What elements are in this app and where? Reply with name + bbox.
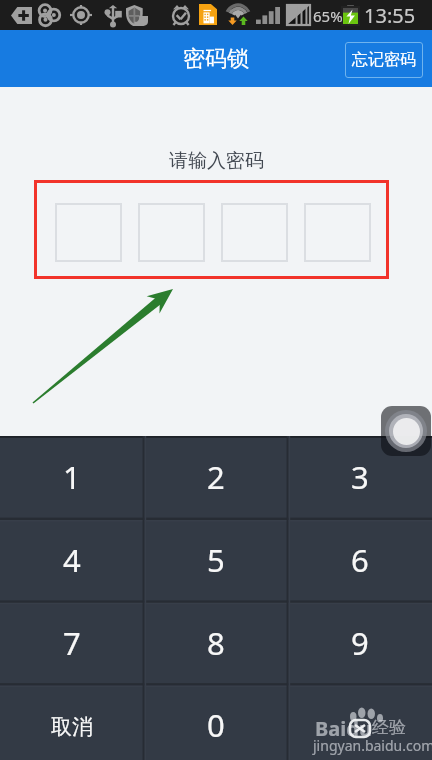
staticText: 密码锁 <box>183 45 249 73</box>
button[interactable]: 2 <box>144 436 288 519</box>
staticText: 经验 <box>372 717 406 738</box>
staticText: 2 <box>207 456 225 498</box>
button[interactable] <box>221 203 288 262</box>
staticText: Baidu <box>315 715 372 742</box>
button[interactable]: 6 <box>288 519 432 602</box>
staticText: 3 <box>351 456 369 498</box>
button[interactable] <box>138 203 205 262</box>
button[interactable]: 5 <box>144 519 288 602</box>
staticText: 忘记密码 <box>352 50 416 70</box>
button[interactable]: 0 <box>144 685 288 760</box>
button[interactable]: 8 <box>144 602 288 685</box>
button[interactable] <box>304 203 371 262</box>
button[interactable] <box>55 203 122 262</box>
button[interactable]: 3 <box>288 436 432 519</box>
button[interactable]: Record <box>381 406 431 456</box>
staticText: 7 <box>63 622 81 664</box>
button[interactable]: 7 <box>0 602 144 685</box>
button[interactable]: 4 <box>0 519 144 602</box>
staticText: 0 <box>207 704 225 746</box>
button[interactable]: 1 <box>0 436 144 519</box>
staticText: 请输入密码 <box>169 149 264 173</box>
staticText: 9 <box>351 622 369 664</box>
staticText: 1 <box>63 456 81 498</box>
staticText: jingyan.baidu.com <box>313 736 432 755</box>
staticText: 5 <box>207 539 225 581</box>
button[interactable]: 取消 <box>0 685 144 760</box>
staticText: 取消 <box>51 714 93 740</box>
button[interactable]: 忘记密码 <box>345 42 423 78</box>
staticText: 8 <box>207 622 225 664</box>
staticText: 13:55 <box>364 2 416 29</box>
button[interactable]: 9 <box>288 602 432 685</box>
staticText: 65% <box>313 6 343 26</box>
staticText: 6 <box>351 539 369 581</box>
button[interactable] <box>288 685 432 760</box>
staticText: 4 <box>63 539 81 581</box>
